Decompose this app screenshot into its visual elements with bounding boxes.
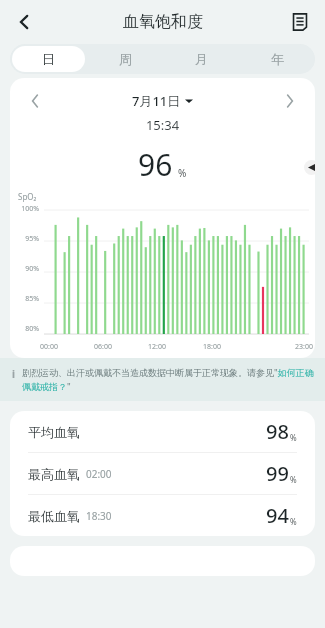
staticText: 血氧饱和度 [123, 12, 203, 32]
button[interactable]: i [12, 366, 315, 393]
staticText: 99 [266, 460, 289, 487]
button[interactable]: 最高血氧 [10, 453, 315, 494]
staticText: 平均血氧 [28, 424, 80, 440]
staticText: 剧烈运动、出汗或佩戴不当造成数据中断属于正常现象。请参见"如何正确佩戴戒指？" [22, 366, 315, 393]
staticText: 06:00 [94, 342, 112, 352]
staticText: 02:00 [86, 467, 112, 481]
staticText: 月 [195, 51, 208, 67]
button[interactable]: Back [6, 4, 42, 40]
staticText: 80% [10, 324, 39, 334]
staticText: 最低血氧 [28, 508, 80, 524]
button[interactable]: 日 [12, 46, 85, 72]
button[interactable]: 最低血氧 [10, 495, 315, 536]
staticText: 7月11日 [132, 92, 181, 110]
staticText: i [12, 367, 15, 381]
staticText: 94 [266, 502, 289, 529]
button[interactable]: Next day [279, 90, 301, 112]
staticText: 日 [42, 51, 55, 67]
staticText: 85% [10, 294, 39, 304]
staticText: 98 [266, 418, 289, 445]
button[interactable]: 平均血氧 [10, 411, 315, 452]
staticText: 15:34 [10, 116, 315, 134]
staticText: 100% [10, 204, 39, 214]
staticText: % [290, 516, 297, 527]
staticText: 95% [10, 234, 39, 244]
staticText: 18:30 [86, 509, 112, 523]
button[interactable]: Expand [304, 160, 319, 175]
staticText: % [290, 432, 297, 443]
staticText: 90% [10, 264, 39, 274]
button[interactable]: Previous day [24, 90, 46, 112]
staticText: 18:00 [203, 342, 221, 352]
button[interactable]: 周 [89, 46, 161, 72]
staticText: 00:00 [40, 342, 58, 352]
staticText: 96 [138, 144, 173, 185]
staticText: 周 [119, 51, 132, 67]
staticText: 12:00 [148, 342, 166, 352]
staticText: % [178, 166, 187, 180]
staticText: SpO₂ [18, 191, 37, 202]
staticText: 年 [271, 51, 284, 67]
button[interactable]: Records [283, 5, 317, 39]
staticText: 最高血氧 [28, 466, 80, 482]
button[interactable]: 月 [165, 46, 237, 72]
staticText: % [290, 474, 297, 485]
button[interactable]: 年 [241, 46, 313, 72]
staticText: 23:00 [295, 342, 313, 352]
